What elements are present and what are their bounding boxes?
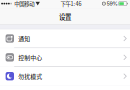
button[interactable]: 控制中心 — [0, 48, 130, 66]
staticText: 下午1:46 — [60, 0, 81, 7]
staticText: 控制中心 — [18, 53, 42, 62]
button[interactable]: 勿扰模式 — [0, 67, 130, 85]
staticText: 通知 — [18, 34, 30, 43]
button[interactable]: 通知 — [0, 29, 130, 48]
staticText: 勿扰模式 — [18, 72, 42, 80]
staticText: 中国移动 — [14, 0, 34, 7]
staticText: 59% — [107, 0, 118, 7]
staticText: 设置 — [59, 12, 71, 21]
